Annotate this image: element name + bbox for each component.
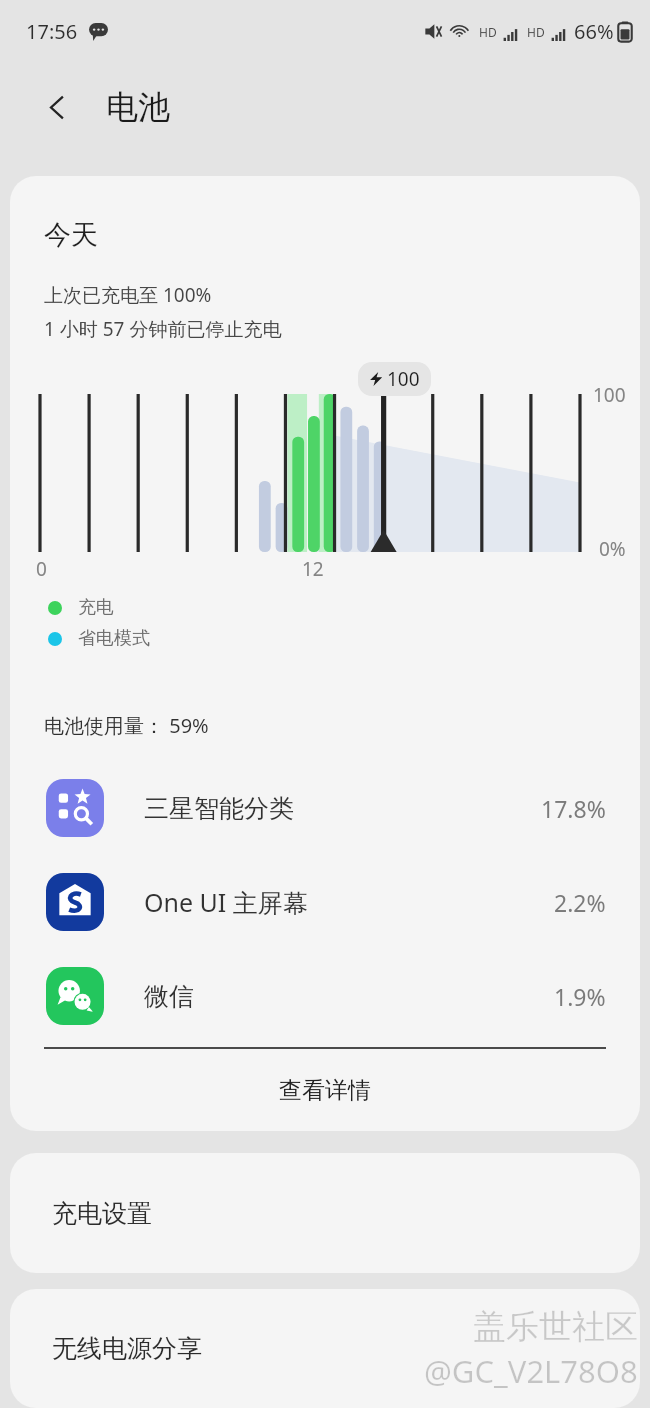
staticText: 1.9% (554, 981, 606, 1012)
staticText: 电池使用量： 59% (44, 712, 209, 739)
staticText: 电池 (106, 87, 170, 127)
button[interactable]: 查看详情 (10, 1049, 640, 1131)
staticText: 100 (593, 382, 626, 408)
staticText: 66% (574, 18, 614, 45)
staticText: 盖乐世社区 (473, 1306, 638, 1348)
staticText: 充电设置 (52, 1198, 152, 1229)
staticText: 无线电源分享 (52, 1333, 202, 1364)
staticText: 充电 (78, 596, 114, 619)
staticText: HD (479, 24, 497, 40)
staticText: 上次已充电至 100% (44, 282, 212, 308)
staticText: @GC_V2L78O8 (424, 1350, 638, 1392)
staticText: 2.2% (554, 887, 606, 918)
staticText: 100 (387, 366, 420, 392)
staticText: One UI 主屏幕 (144, 885, 308, 919)
button[interactable]: 充电设置 (10, 1153, 640, 1273)
staticText: 三星智能分类 (144, 793, 294, 824)
button[interactable]: 三星智能分类 (10, 761, 640, 855)
staticText: 17:56 (26, 18, 78, 45)
button[interactable]: 无线电源分享 (10, 1289, 640, 1408)
staticText: 0 (36, 556, 47, 578)
staticText: 今天 (44, 218, 98, 252)
staticText: 省电模式 (78, 627, 150, 650)
button[interactable]: One UI 主屏幕 (10, 855, 640, 949)
staticText: 查看详情 (279, 1076, 371, 1105)
staticText: 12 (302, 556, 324, 578)
staticText: 微信 (144, 981, 194, 1012)
staticText: 17.8% (541, 793, 606, 824)
button[interactable]: 返回 (32, 82, 82, 132)
staticText: HD (527, 24, 545, 40)
button[interactable]: 微信 (10, 949, 640, 1043)
staticText: 1 小时 57 分钟前已停止充电 (44, 316, 282, 342)
staticText: 0% (599, 536, 626, 562)
